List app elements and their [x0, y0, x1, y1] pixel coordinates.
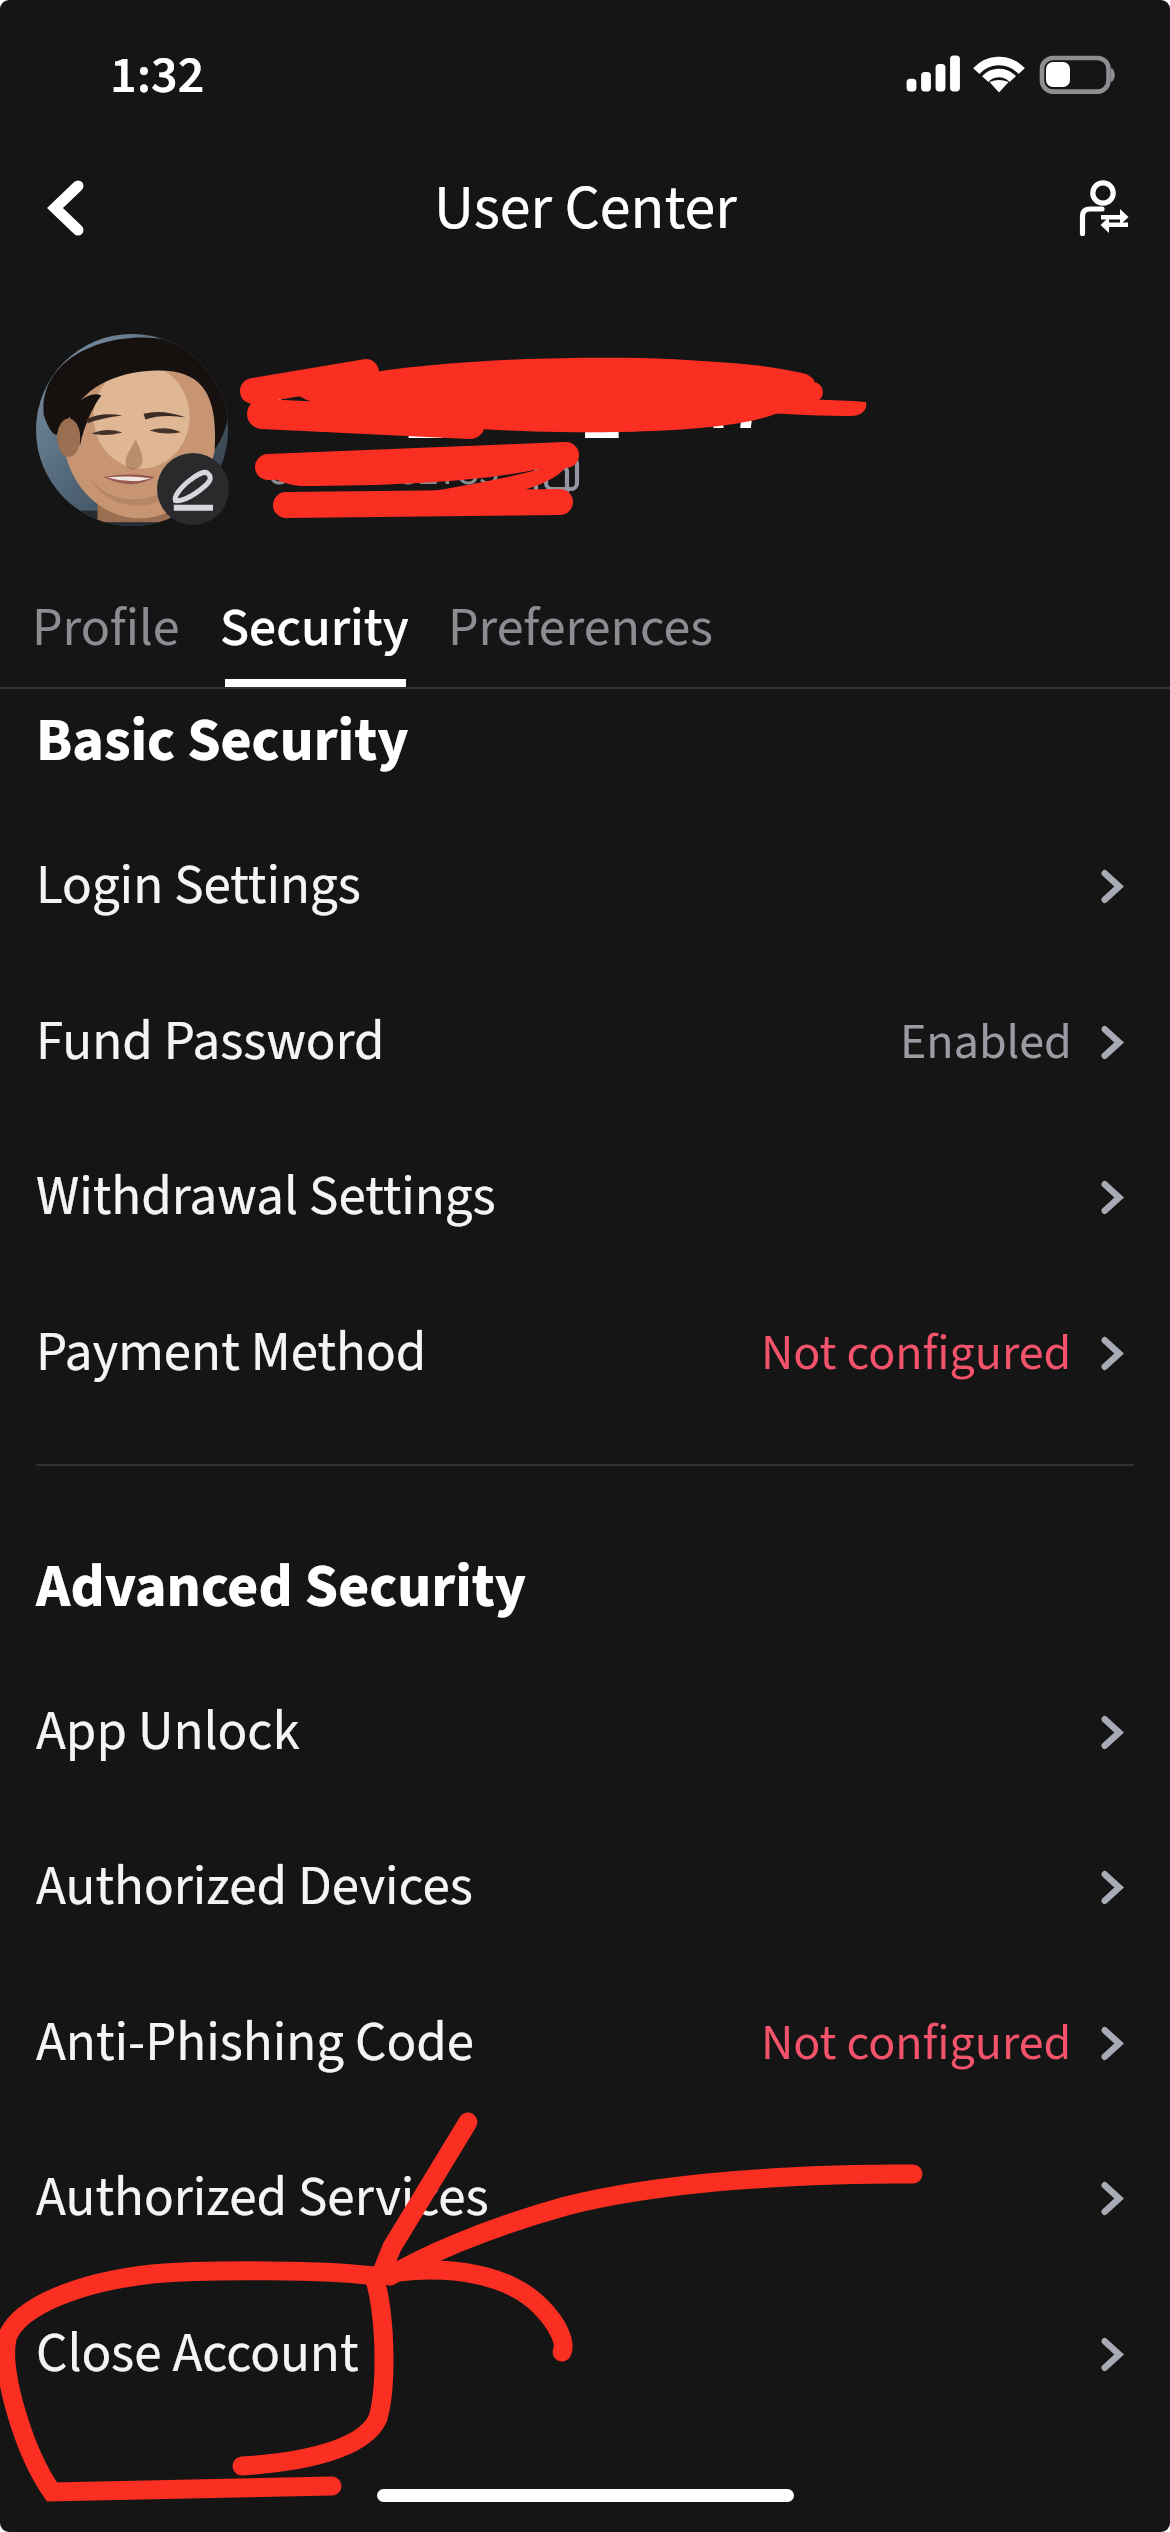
staticText: Advanced Security — [36, 1545, 527, 1630]
staticText: UID 10482735 — [266, 442, 500, 500]
button[interactable]: Security — [220, 590, 409, 688]
staticText: Anti-Phishing Code — [36, 2004, 475, 2082]
staticText: Withdrawal Settings — [36, 1158, 496, 1236]
staticText: Preferences — [448, 590, 713, 667]
button[interactable]: Edit profile picture — [157, 453, 229, 525]
staticText: 1:32 — [110, 39, 205, 113]
staticText: Authorized Devices — [36, 1848, 473, 1926]
staticText: Enabled — [900, 1007, 1072, 1078]
button[interactable]: App Unlock — [0, 1655, 1170, 1809]
button[interactable]: Authorized Services — [0, 2121, 1170, 2275]
staticText: App Unlock — [36, 1693, 300, 1771]
staticText: Basic Security — [36, 699, 409, 784]
staticText: Gate_User_1547 — [266, 356, 768, 456]
staticText: Security — [220, 590, 409, 667]
button[interactable]: Profile — [32, 590, 180, 688]
button[interactable]: Payment Method — [0, 1276, 1170, 1430]
staticText: User Center — [434, 165, 737, 253]
button[interactable]: Login Settings — [0, 809, 1170, 963]
button[interactable]: Withdrawal Settings — [0, 1120, 1170, 1274]
staticText: Not configured — [761, 1318, 1072, 1389]
staticText: Profile — [32, 590, 180, 667]
staticText: Not configured — [761, 2008, 1072, 2079]
staticText: Authorized Services — [36, 2159, 489, 2237]
staticText: Fund Password — [36, 1003, 385, 1081]
button[interactable]: Switch account — [1070, 168, 1140, 242]
button[interactable]: Preferences — [448, 590, 713, 688]
button[interactable]: Close Account — [0, 2277, 1170, 2431]
button[interactable]: Authorized Devices — [0, 1810, 1170, 1964]
button[interactable]: Anti-Phishing Code — [0, 1966, 1170, 2120]
staticText: Login Settings — [36, 847, 361, 925]
staticText: Payment Method — [36, 1314, 427, 1392]
button[interactable]: Fund Password — [0, 965, 1170, 1119]
button[interactable]: Back — [20, 162, 112, 254]
staticText: Close Account — [36, 2315, 359, 2393]
